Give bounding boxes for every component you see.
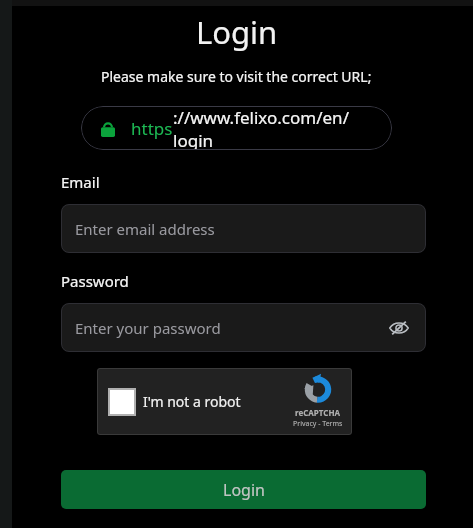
staticText: Please make sure to visit the correct UR…	[101, 67, 372, 86]
staticText: Email	[61, 172, 100, 192]
staticText: Enter email address	[75, 219, 215, 239]
staticText: Enter your password	[75, 318, 221, 338]
staticText: I'm not a robot	[143, 392, 241, 411]
staticText: Password	[61, 271, 129, 291]
staticText: Login	[223, 479, 265, 501]
button[interactable]: Show password	[386, 315, 412, 341]
button[interactable]: Enter your password	[61, 303, 426, 352]
staticText: Privacy - Terms	[293, 419, 343, 429]
button[interactable]: Enter email address	[61, 204, 426, 253]
button[interactable]: https	[81, 106, 392, 150]
staticText: Login	[196, 11, 278, 53]
button[interactable]: I'm not a robot	[97, 368, 352, 435]
staticText: ://www.felixo.com/en/login	[173, 106, 372, 150]
staticText: https	[131, 117, 173, 140]
button[interactable]: Login	[61, 470, 426, 509]
staticText: reCAPTCHA	[295, 407, 341, 418]
